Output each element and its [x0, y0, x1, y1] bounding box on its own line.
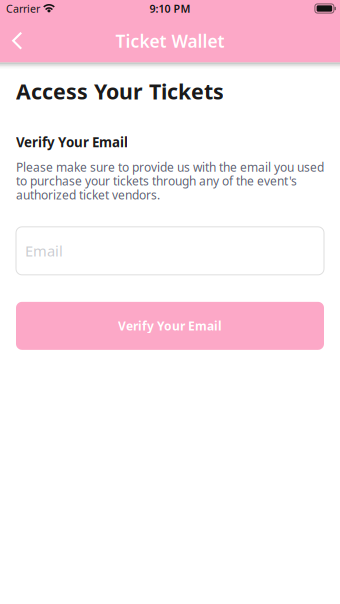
staticText: 9:10 PM — [149, 1, 190, 16]
button[interactable]: Verify Your Email — [16, 302, 324, 350]
staticText: Access Your Tickets — [16, 77, 224, 105]
staticText: Verify Your Email — [118, 318, 222, 334]
staticText: Email — [25, 241, 63, 261]
staticText: Ticket Wallet — [115, 29, 224, 52]
staticText: Verify Your Email — [16, 133, 128, 151]
button[interactable]: Back — [0, 20, 33, 62]
staticText: Carrier — [6, 1, 40, 16]
staticText: Please make sure to provide us with the … — [16, 159, 324, 203]
